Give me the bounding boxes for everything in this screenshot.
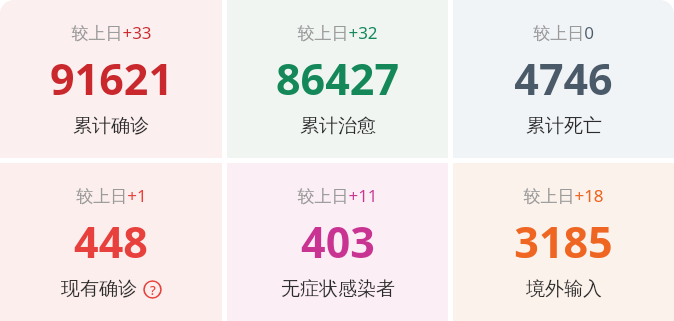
staticText: 累计死亡 [526, 114, 602, 138]
staticText: 无症状感染者 [281, 277, 395, 301]
staticText: 累计治愈 [300, 114, 376, 138]
button[interactable]: 说明 [143, 280, 162, 299]
staticText: 448 [74, 212, 148, 271]
staticText: 3185 [514, 212, 613, 271]
button[interactable]: 较上日0 [453, 0, 674, 158]
staticText: 较上日+1 [76, 184, 147, 207]
staticText: 累计确诊 [73, 114, 149, 138]
staticText: 4746 [514, 49, 613, 108]
staticText: 91621 [50, 49, 173, 108]
button[interactable]: 较上日+1 [0, 163, 222, 321]
staticText: ? [150, 281, 156, 299]
staticText: 境外输入 [526, 277, 602, 301]
staticText: 403 [301, 212, 375, 271]
staticText: 较上日+33 [71, 21, 152, 44]
staticText: 较上日0 [533, 21, 594, 44]
staticText: 较上日+32 [297, 21, 378, 44]
staticText: 现有确诊 [61, 277, 137, 301]
button[interactable]: 较上日+33 [0, 0, 222, 158]
staticText: 较上日+18 [523, 184, 604, 207]
staticText: 86427 [276, 49, 399, 108]
button[interactable]: 较上日+11 [227, 163, 448, 321]
staticText: 较上日+11 [297, 184, 378, 207]
button[interactable]: 较上日+32 [227, 0, 448, 158]
button[interactable]: 较上日+18 [453, 163, 674, 321]
